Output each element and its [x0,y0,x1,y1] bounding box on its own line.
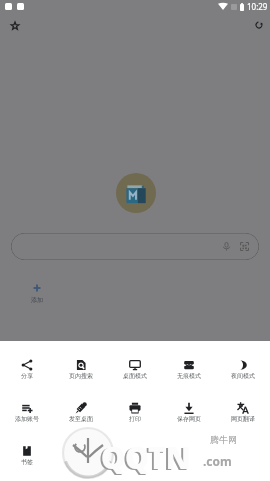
button[interactable] [11,233,259,260]
button[interactable]: 夜间模式 [216,359,270,380]
staticText: 桌面模式 [123,372,147,380]
button[interactable]: 添加 [23,284,51,304]
button[interactable]: 页内搜索 [54,359,108,380]
staticText: 腾牛网 [210,434,237,445]
staticText: .com [203,453,232,469]
staticText: 分享 [21,372,33,380]
staticText: 打印 [129,415,141,423]
button[interactable]: Bookmark [5,15,25,35]
staticText: 无痕模式 [177,372,201,380]
button[interactable]: 桌面模式 [108,359,162,380]
button[interactable]: Refresh [249,15,269,35]
button[interactable]: 保存网页 [162,402,216,423]
staticText: QQTN [101,437,191,478]
staticText: 夜间模式 [231,372,255,380]
staticText: 添加 [31,296,43,304]
staticText: QQTN [99,438,189,479]
staticText: 网页翻译 [231,415,255,423]
button[interactable]: 书签 [0,445,54,466]
button[interactable]: 无痕模式 [162,359,216,380]
staticText: 10:29 [247,1,268,12]
staticText: 页内搜索 [69,372,93,380]
button[interactable]: 打印 [108,402,162,423]
button[interactable]: 分享 [0,359,54,380]
button[interactable]: 发至桌面 [54,402,108,423]
button[interactable]: 网页翻译 [216,402,270,423]
staticText: 添加账号 [15,415,39,423]
button[interactable]: 添加账号 [0,402,54,423]
staticText: 书签 [21,458,33,466]
staticText: 保存网页 [177,415,201,423]
staticText: 发至桌面 [69,415,93,423]
